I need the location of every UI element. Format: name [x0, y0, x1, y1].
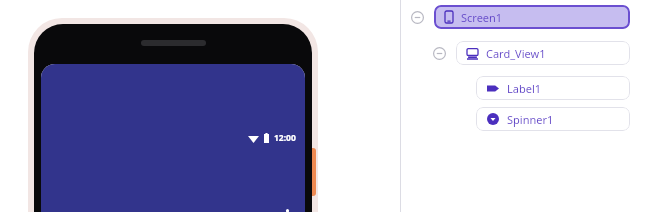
button[interactable]: Screen1	[434, 5, 630, 29]
button[interactable]: Collapse Card_View1	[432, 46, 446, 60]
staticText: Label1	[507, 81, 542, 96]
staticText: Card_View1	[486, 46, 546, 61]
button[interactable]: Spinner1	[476, 107, 630, 131]
staticText: Spinner1	[507, 112, 554, 127]
button[interactable]: Collapse Screen1	[410, 10, 424, 24]
staticText: 12:00	[274, 132, 296, 144]
staticText: Screen1	[461, 10, 503, 25]
button[interactable]: Label1	[476, 76, 630, 100]
button[interactable]: Card_View1	[456, 41, 630, 65]
